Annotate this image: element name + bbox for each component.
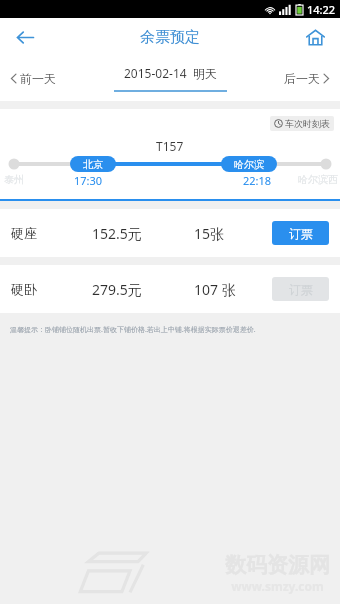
button[interactable]: 2015-02-14 明天 xyxy=(114,65,227,92)
staticText: 余票预定 xyxy=(140,28,200,47)
staticText: 17:30 xyxy=(74,173,103,188)
staticText: 哈尔滨 xyxy=(234,158,264,171)
staticText: 硬卧 xyxy=(11,281,37,297)
button[interactable]: 前一天 xyxy=(6,67,60,90)
staticText: 279.5元 xyxy=(92,280,142,299)
staticText: 泰州 xyxy=(4,173,24,186)
staticText: 2015-02-14 明天 xyxy=(124,65,217,81)
button[interactable]: 订票 xyxy=(272,277,329,301)
staticText: 15张 xyxy=(194,224,225,243)
button[interactable]: 订票 xyxy=(272,221,329,245)
button[interactable]: 哈尔滨 xyxy=(221,156,277,172)
staticText: 22:18 xyxy=(243,173,272,188)
staticText: 数码资源网 xyxy=(225,552,330,578)
staticText: 前一天 xyxy=(20,71,56,86)
button[interactable]: 车次时刻表 xyxy=(270,116,334,131)
staticText: 北京 xyxy=(83,158,103,171)
staticText: 14:22 xyxy=(307,2,336,17)
staticText: 后一天 xyxy=(284,71,320,86)
button[interactable]: Home xyxy=(298,20,332,54)
button[interactable]: 后一天 xyxy=(280,67,334,90)
staticText: 硬座 xyxy=(11,225,37,241)
staticText: www.smzy.com xyxy=(231,578,324,594)
button[interactable]: 北京 xyxy=(70,156,116,172)
staticText: 温馨提示：卧铺铺位随机出票.暂收下铺价格.若出上中铺.将根据实际票价退差价. xyxy=(10,325,256,335)
button[interactable]: Back xyxy=(8,20,42,54)
staticText: T157 xyxy=(156,138,184,154)
staticText: 车次时刻表 xyxy=(285,118,330,129)
staticText: 152.5元 xyxy=(92,224,142,243)
staticText: 107 张 xyxy=(194,280,236,299)
staticText: 哈尔滨西 xyxy=(298,173,338,186)
staticText: 订票 xyxy=(289,226,313,241)
staticText: 订票 xyxy=(289,282,313,297)
